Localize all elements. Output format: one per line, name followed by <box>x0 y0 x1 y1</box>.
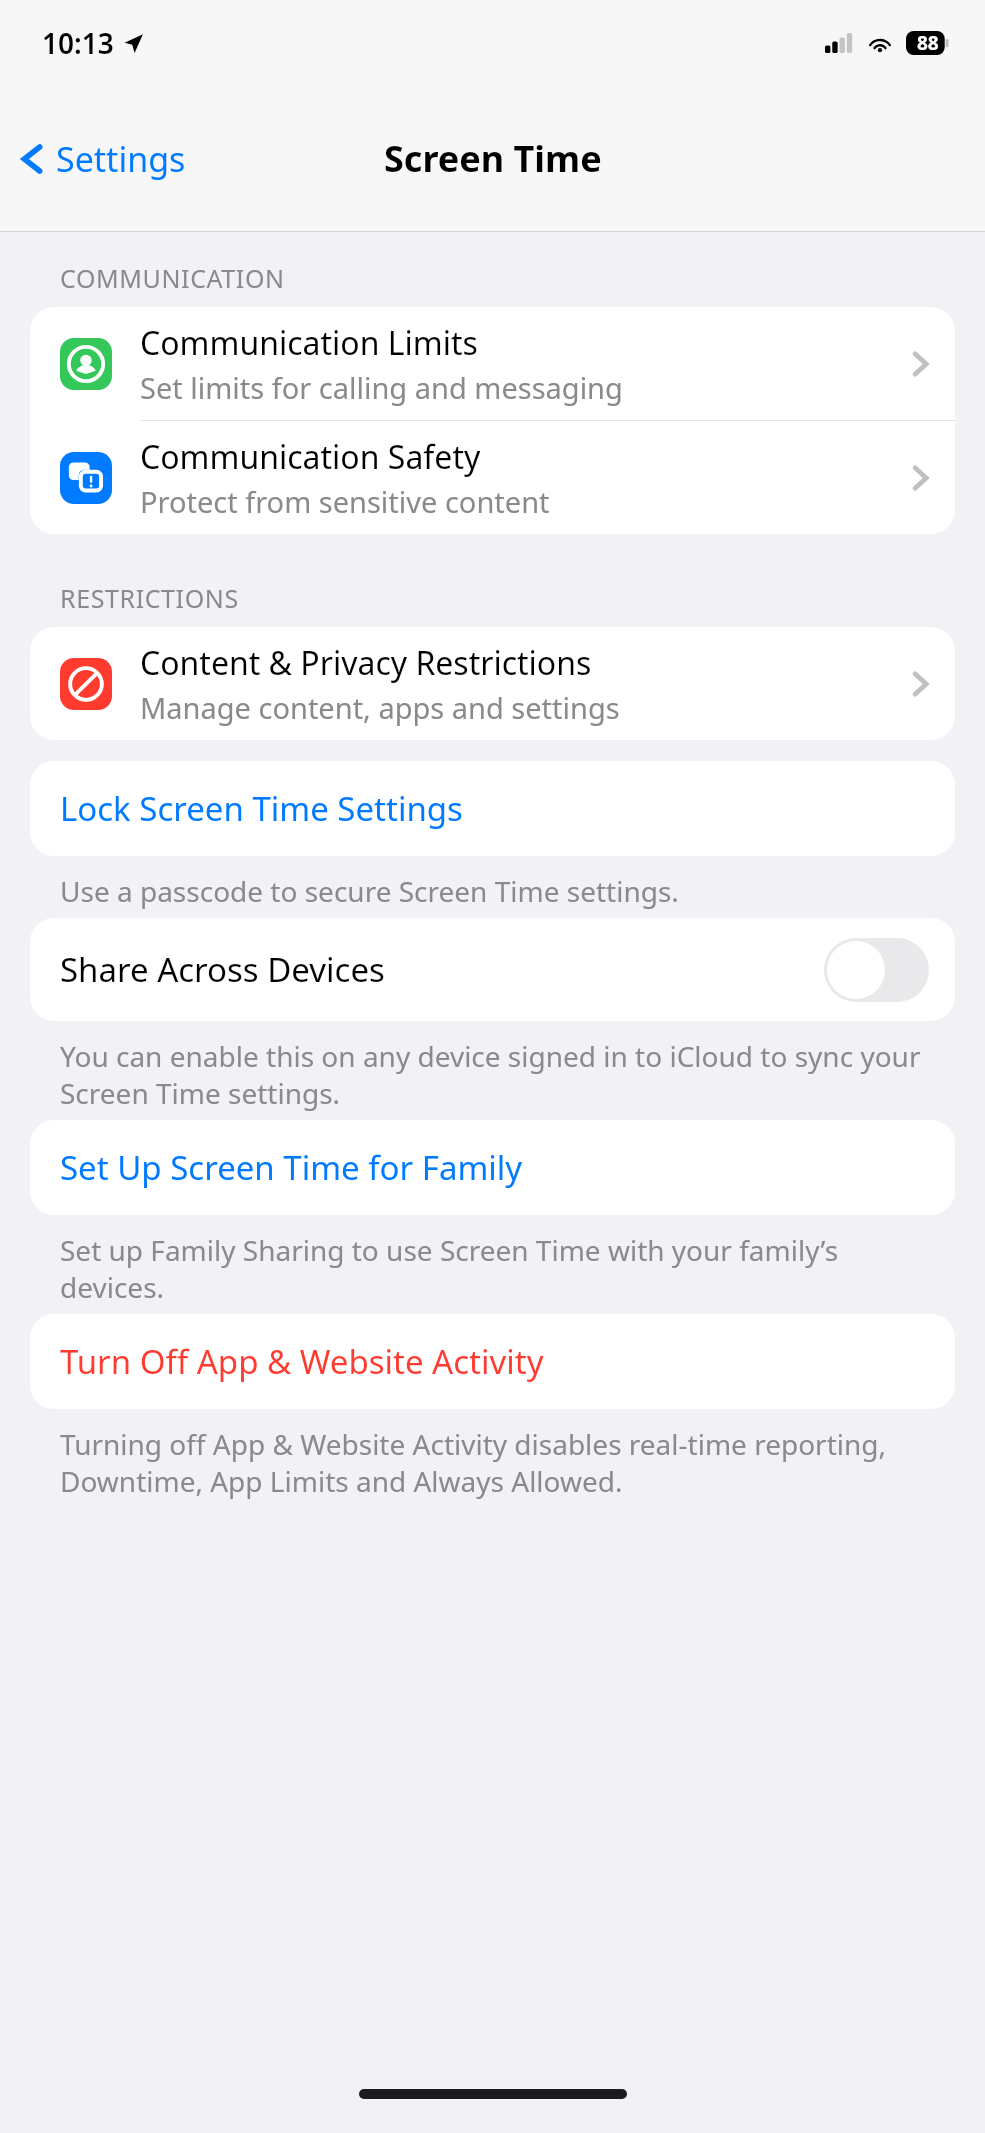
staticText: COMMUNICATION <box>60 261 285 295</box>
staticText: RESTRICTIONS <box>60 581 239 615</box>
button[interactable]: Communication Limits <box>30 307 955 421</box>
button[interactable]: Lock Screen Time Settings <box>30 761 955 856</box>
staticText: You can enable this on any device signed… <box>60 1037 935 1112</box>
staticText: Content & Privacy Restrictions <box>140 641 592 685</box>
staticText: Settings <box>56 136 186 182</box>
staticText: Manage content, apps and settings <box>140 688 620 727</box>
staticText: Screen Time <box>384 134 602 183</box>
staticText: Lock Screen Time Settings <box>60 786 463 831</box>
button[interactable]: Turn Off App & Website Activity <box>30 1314 955 1409</box>
button[interactable]: Communication Safety <box>30 421 955 534</box>
staticText: Use a passcode to secure Screen Time set… <box>60 872 679 910</box>
staticText: Set Up Screen Time for Family <box>60 1145 523 1190</box>
other: Share Across Devices toggle, off <box>824 938 929 1002</box>
staticText: Communication Safety <box>140 435 481 479</box>
staticText: 10:13 <box>42 24 114 62</box>
button[interactable]: Share Across Devices <box>30 918 955 1021</box>
button[interactable]: Content & Privacy Restrictions <box>30 627 955 740</box>
staticText: Turn Off App & Website Activity <box>60 1339 544 1384</box>
button[interactable]: Set Up Screen Time for Family <box>30 1120 955 1215</box>
button[interactable]: Settings <box>0 126 202 192</box>
staticText: Communication Limits <box>140 321 478 365</box>
staticText: Turning off App & Website Activity disab… <box>60 1425 935 1500</box>
staticText: Protect from sensitive content <box>140 482 550 521</box>
staticText: Set up Family Sharing to use Screen Time… <box>60 1231 935 1306</box>
staticText: 88 <box>917 30 939 56</box>
staticText: Set limits for calling and messaging <box>140 368 623 407</box>
staticText: Share Across Devices <box>60 947 824 992</box>
